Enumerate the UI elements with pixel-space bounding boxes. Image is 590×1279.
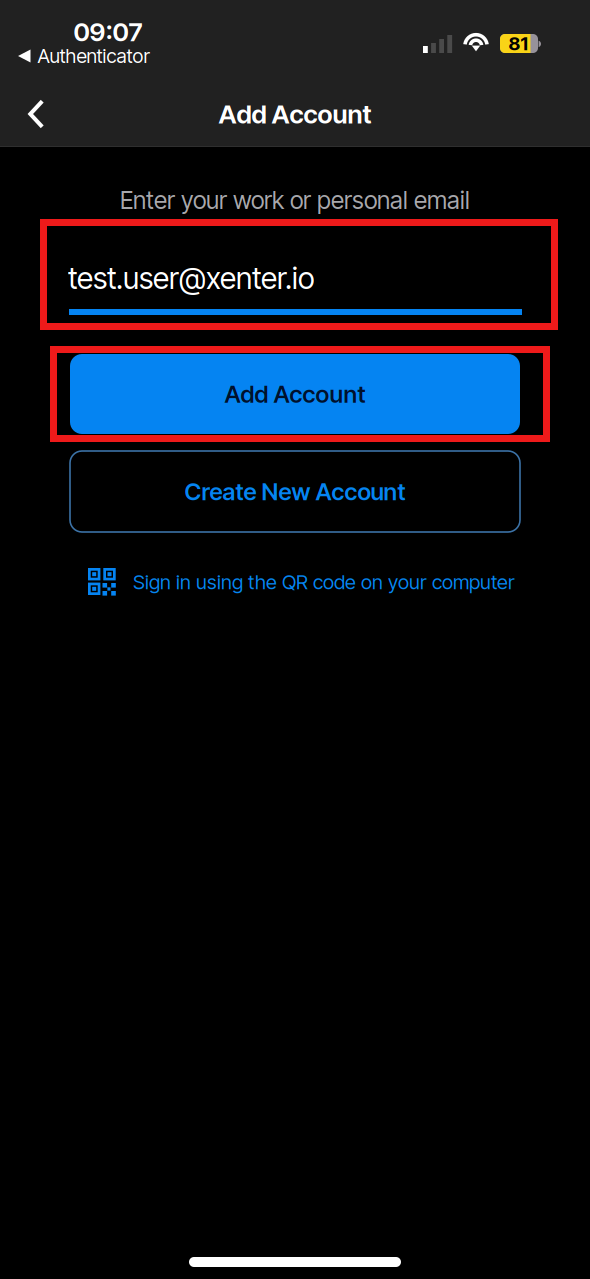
button[interactable]: Authenticator	[18, 45, 149, 67]
button[interactable]: Sign in using the QR code on your comput…	[88, 565, 528, 599]
button[interactable]: Back	[8, 86, 64, 142]
staticText: Enter your work or personal email	[120, 185, 470, 215]
staticText: Add Account	[224, 379, 365, 408]
staticText: Create New Account	[184, 477, 405, 506]
staticText: 81	[508, 32, 527, 55]
staticText: 09:07	[73, 16, 142, 47]
staticText: Add Account	[218, 98, 371, 130]
button[interactable]: Create New Account	[70, 451, 520, 532]
staticText: test.user@xenter.io	[68, 260, 314, 296]
staticText: Sign in using the QR code on your comput…	[133, 570, 515, 594]
staticText: Authenticator	[37, 44, 149, 68]
button[interactable]: Add Account	[70, 354, 520, 434]
